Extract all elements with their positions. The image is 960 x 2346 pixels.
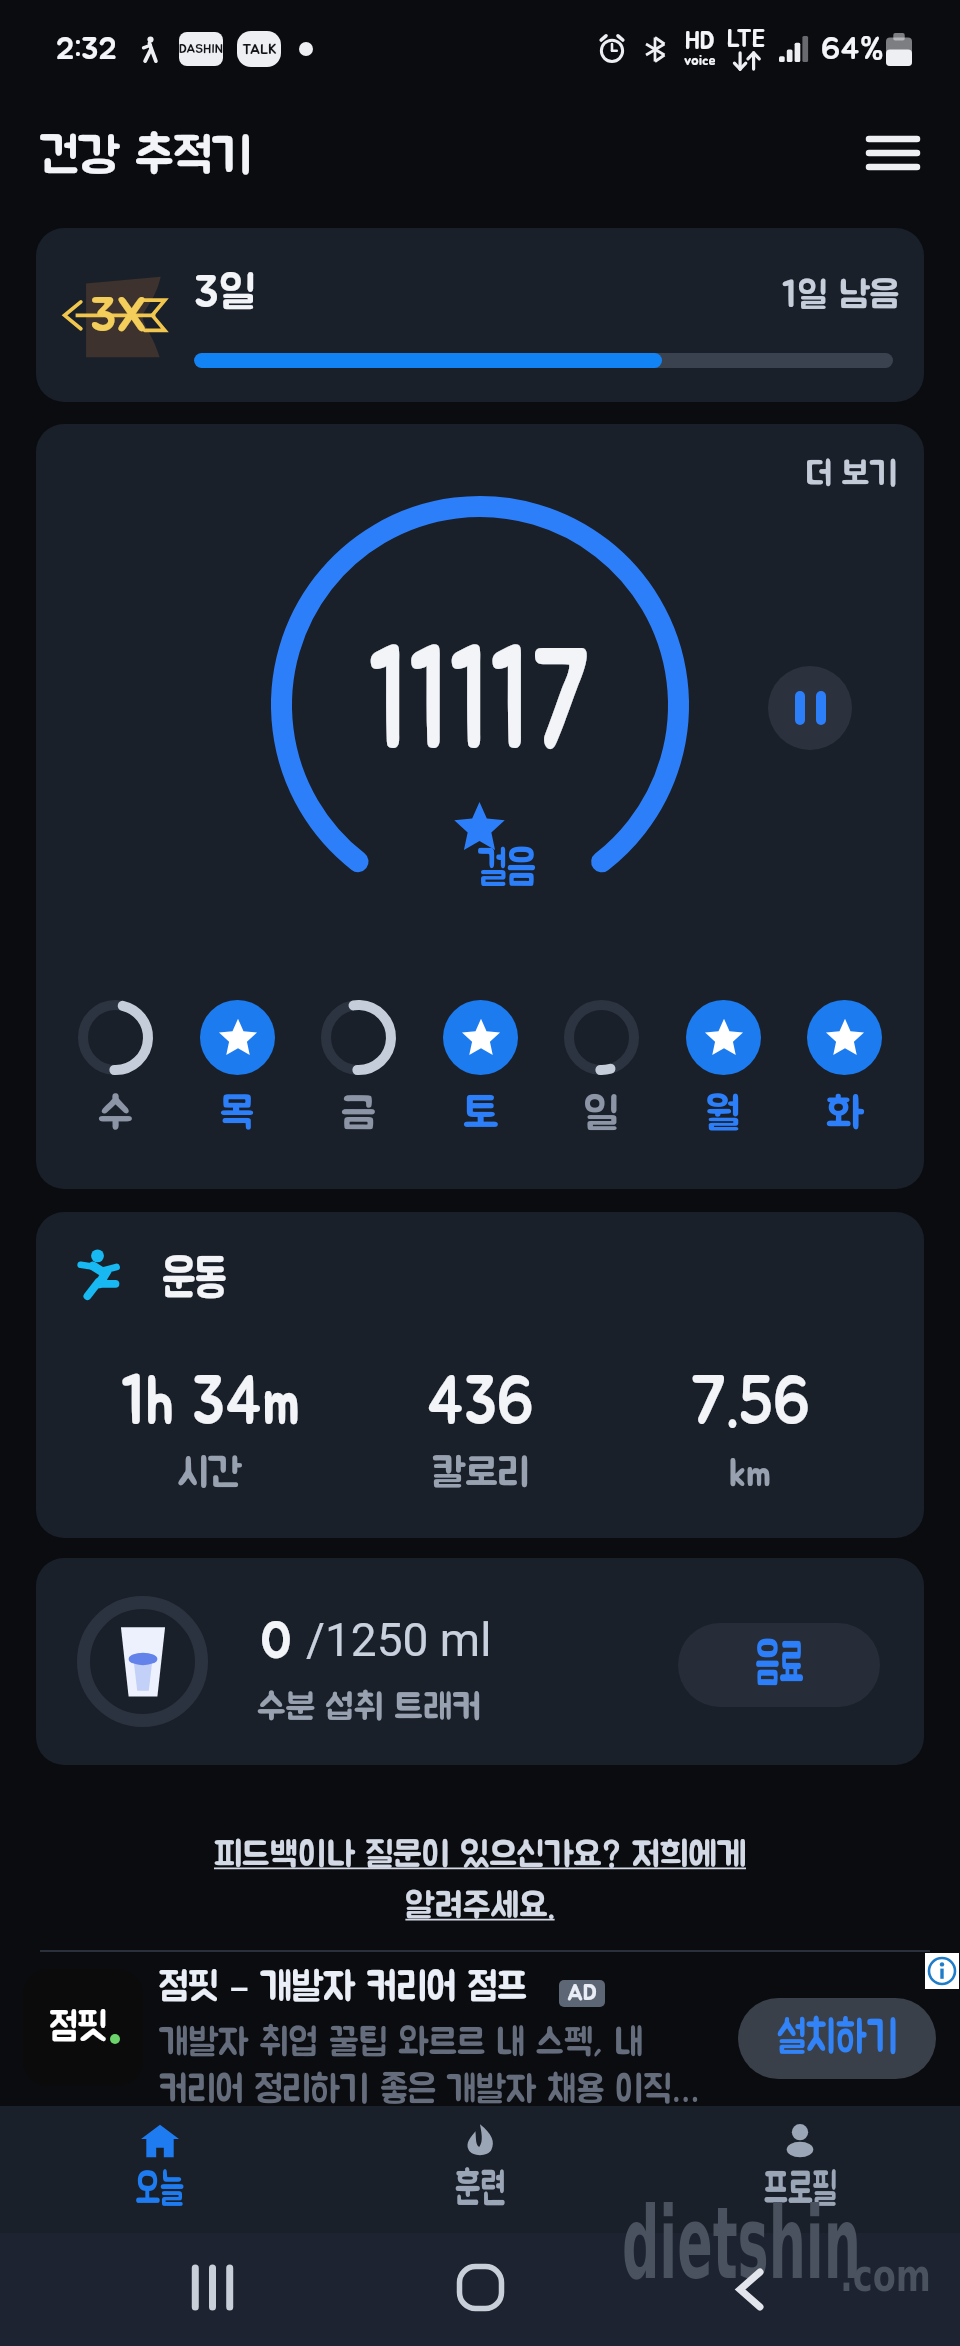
staticText: 0 xyxy=(260,1616,292,1668)
button[interactable]: 더 보기 xyxy=(806,458,898,492)
button[interactable]: 프로필 xyxy=(640,2106,960,2233)
staticText: 시간 xyxy=(178,1454,243,1494)
button[interactable]: 월 xyxy=(686,1000,761,1137)
button[interactable]: Recents xyxy=(192,2265,233,2310)
button[interactable]: Home xyxy=(457,2264,504,2311)
staticText: 점핏 xyxy=(49,2008,107,2048)
staticText: 3일 xyxy=(194,271,257,316)
staticText: 436 xyxy=(426,1370,535,1438)
staticText: 훈련 xyxy=(455,2168,506,2213)
staticText: 프로필 xyxy=(764,2168,837,2213)
staticText: LTE xyxy=(727,28,766,52)
staticText: 운동 xyxy=(162,1254,227,1307)
staticText: 칼로리 xyxy=(432,1454,529,1494)
button[interactable]: Back xyxy=(737,2269,763,2310)
staticText: 1일 남음 xyxy=(782,277,899,314)
staticText: 건강 추적기 xyxy=(39,133,253,182)
button[interactable]: 목 xyxy=(200,1000,275,1137)
staticText: 걸음 xyxy=(477,846,536,894)
staticText: 7.56 xyxy=(690,1370,811,1438)
staticText: dietshin xyxy=(622,2185,861,2298)
staticText: 일 xyxy=(583,1093,620,1137)
staticText: TALK xyxy=(242,42,277,57)
staticText: 수분 섭취 트래커 xyxy=(257,1690,482,1726)
button[interactable]: 오늘 xyxy=(0,2106,320,2233)
staticText: km xyxy=(729,1454,771,1494)
staticText: 64% xyxy=(821,34,884,65)
button[interactable]: 3X xyxy=(36,228,924,402)
button[interactable]: 훈련 xyxy=(320,2106,640,2233)
button[interactable]: 수 xyxy=(78,1000,153,1137)
staticText: 2:32 xyxy=(56,34,117,65)
staticText: 수 xyxy=(98,1093,133,1137)
staticText: voice xyxy=(684,54,716,68)
button[interactable]: 음료 xyxy=(678,1623,880,1707)
button[interactable]: Pause xyxy=(768,666,852,750)
staticText: 3X xyxy=(90,293,147,341)
staticText: 오늘 xyxy=(135,2168,184,2213)
staticText: 점핏 – 개발자 커리어 점프 xyxy=(159,1957,528,2011)
staticText: 토 xyxy=(463,1093,499,1137)
staticText: 설치하기 xyxy=(777,2016,898,2061)
button[interactable]: 운동 xyxy=(36,1212,924,1538)
staticText: 11117 xyxy=(369,635,591,776)
staticText: 음료 xyxy=(755,1637,804,1694)
staticText: 피드백이나 질문이 있으신가요? 저희에게 알려주세요. xyxy=(200,1838,760,1924)
staticText: 금 xyxy=(341,1093,376,1137)
button[interactable]: 일 xyxy=(564,1000,639,1137)
button[interactable]: 금 xyxy=(321,1000,396,1137)
staticText: .com xyxy=(840,2250,931,2301)
button[interactable]: 피드백이나 질문이 있으신가요? 저희에게 알려주세요. xyxy=(200,1838,760,1924)
button[interactable]: 화 xyxy=(807,1000,882,1137)
staticText: /1250 ml xyxy=(306,1613,492,1667)
staticText: 1h 34m xyxy=(121,1370,300,1438)
button[interactable]: 설치하기 xyxy=(738,1998,936,2079)
staticText: AD xyxy=(567,1982,598,2005)
staticText: 개발자 취업 꿀팁 와르르 내 스펙, 내 커리어 정리하기 좋은 개발자 채용… xyxy=(159,2025,742,2113)
staticText: DASHIN xyxy=(179,43,223,56)
staticText: 화 xyxy=(826,1093,864,1137)
staticText: HD xyxy=(685,30,715,54)
button[interactable]: Menu xyxy=(854,114,932,192)
button[interactable]: 토 xyxy=(443,1000,518,1137)
staticText: 목 xyxy=(220,1093,255,1137)
staticText: 월 xyxy=(705,1093,742,1137)
